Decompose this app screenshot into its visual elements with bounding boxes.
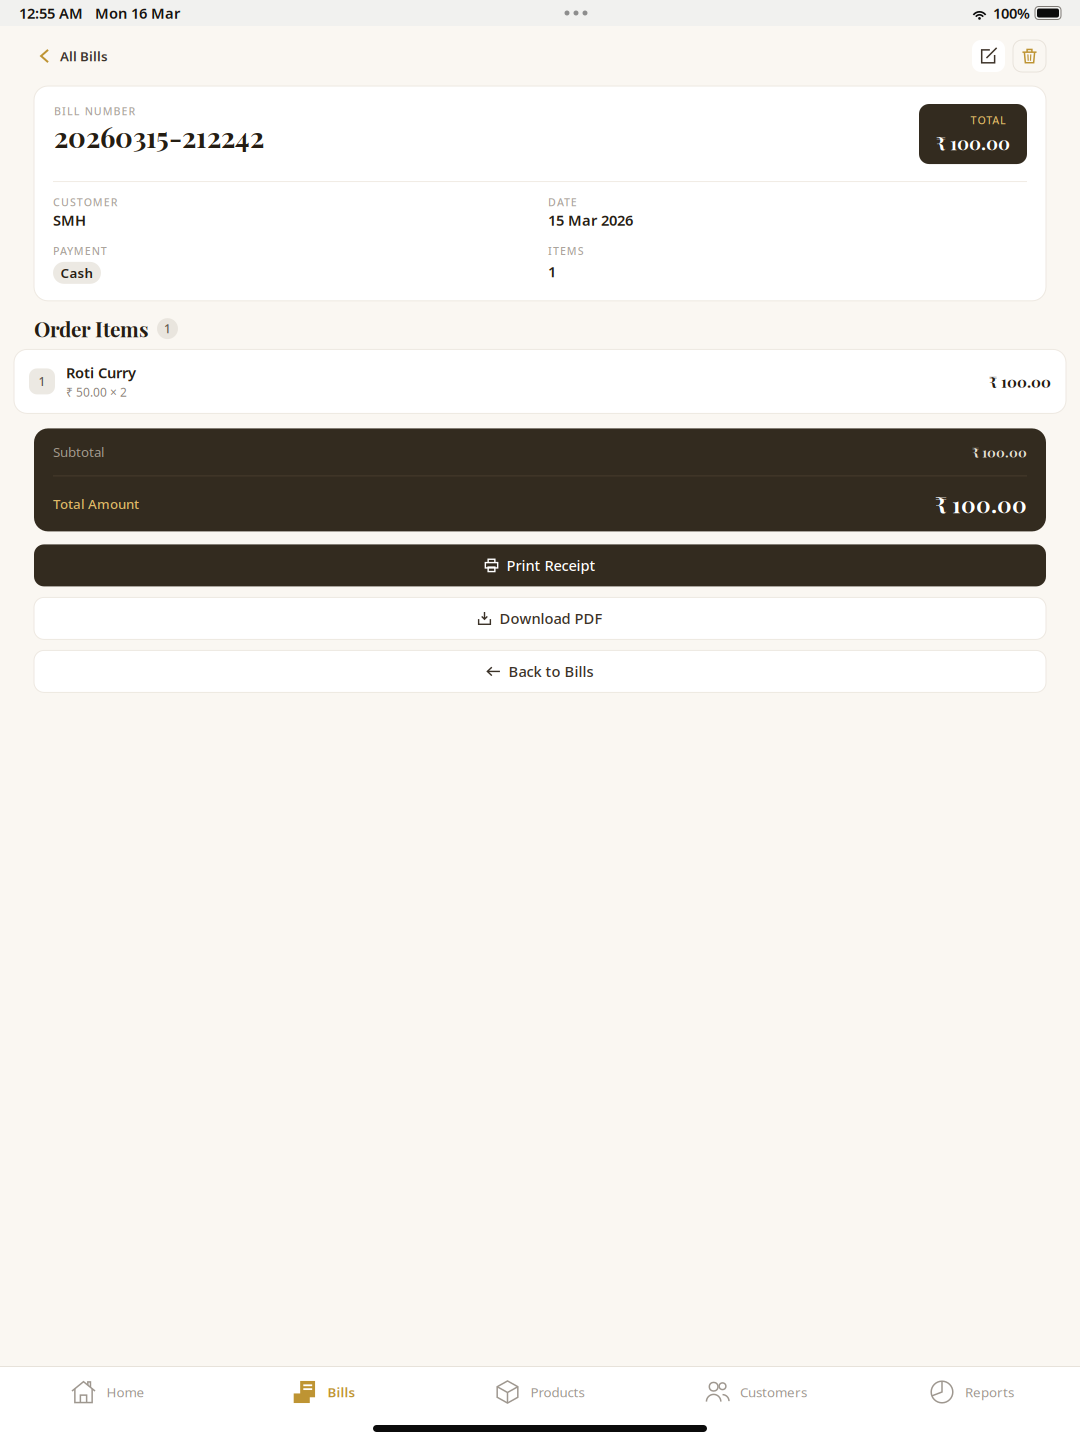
button[interactable]: Download PDF [34, 597, 1046, 639]
staticText: PAYMENT [53, 244, 111, 258]
staticText: Mon 16 Mar [95, 3, 180, 23]
button[interactable]: All Bills [0, 41, 122, 71]
staticText: 1 [38, 373, 45, 389]
staticText: Back to Bills [508, 662, 593, 681]
staticText: ₹ 100.00 [936, 130, 1010, 155]
staticText: ₹ 50.00 × 2 [66, 384, 127, 400]
staticText: 15 Mar 2026 [548, 210, 633, 230]
staticText: ITEMS [548, 244, 588, 258]
staticText: 20260315-212242 [54, 118, 264, 155]
staticText: 1 [164, 321, 171, 337]
button[interactable]: Home [0, 1368, 216, 1416]
button[interactable]: Back to Bills [34, 650, 1046, 692]
staticText: Reports [965, 1383, 1014, 1401]
staticText: Print Receipt [506, 556, 595, 575]
staticText: ₹ 100.00 [989, 371, 1051, 392]
staticText: Products [530, 1383, 584, 1401]
staticText: CUSTOMER [53, 195, 122, 209]
button[interactable]: Print Receipt [34, 544, 1046, 586]
button[interactable]: Customers [648, 1368, 864, 1416]
staticText: BILL NUMBER [54, 104, 139, 118]
staticText: 12:55 AM [19, 3, 83, 23]
staticText: Download PDF [499, 609, 602, 628]
staticText: DATE [548, 195, 581, 209]
staticText: Customers [740, 1383, 807, 1401]
staticText: ₹ 100.00 [972, 443, 1027, 461]
button[interactable]: Bills [216, 1368, 432, 1416]
staticText: ₹ 100.00 [935, 489, 1027, 519]
button[interactable]: Products [432, 1368, 648, 1416]
button[interactable]: Delete bill [1013, 40, 1046, 72]
staticText: Cash [60, 264, 93, 282]
staticText: SMH [53, 210, 86, 230]
staticText: Order Items [34, 315, 149, 342]
staticText: Home [106, 1383, 144, 1401]
staticText: All Bills [60, 47, 108, 65]
staticText: 100% [993, 3, 1030, 23]
staticText: Bills [327, 1383, 355, 1401]
button[interactable]: Reports [864, 1368, 1080, 1416]
staticText: Roti Curry [66, 363, 136, 382]
button[interactable]: Edit bill [972, 40, 1005, 72]
staticText: TOTAL [970, 113, 1010, 127]
staticText: Subtotal [53, 443, 104, 461]
staticText: Total Amount [53, 495, 139, 513]
staticText: 1 [548, 262, 556, 281]
